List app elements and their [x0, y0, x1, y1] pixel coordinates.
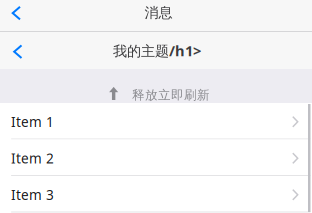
button[interactable]: Item 3: [0, 176, 312, 212]
button[interactable]: Back: [0, 0, 34, 31]
staticText: Item 1: [11, 112, 54, 131]
button[interactable]: Back: [0, 32, 34, 69]
staticText: Item 2: [11, 149, 54, 167]
staticText: 我的主题/h1>: [113, 41, 201, 60]
staticText: 消息: [144, 4, 172, 22]
button[interactable]: Item 2: [0, 139, 312, 176]
staticText: 释放立即刷新: [132, 87, 210, 103]
staticText: Item 3: [11, 185, 54, 204]
button[interactable]: Item 1: [0, 103, 312, 139]
